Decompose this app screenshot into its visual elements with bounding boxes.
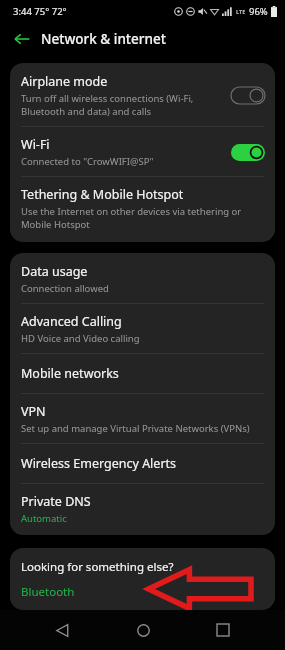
staticText: 3:44 75° 72°: [13, 5, 67, 18]
staticText: Looking for something else?: [21, 559, 174, 575]
button[interactable]: Back: [44, 612, 80, 648]
button[interactable]: Airplane mode: [10, 63, 275, 126]
staticText: Tethering & Mobile Hotspot: [21, 186, 184, 203]
staticText: Use the Internet on other devices via te…: [21, 205, 265, 231]
staticText: Automatic: [21, 512, 67, 525]
staticText: Bluetooth: [21, 584, 75, 596]
button[interactable]: Mobile networks: [10, 354, 275, 393]
staticText: Set up and manage Virtual Private Networ…: [21, 422, 250, 435]
staticText: VPN: [21, 403, 46, 420]
button[interactable]: Bluetooth: [21, 584, 75, 596]
button[interactable]: Home: [125, 612, 161, 648]
staticText: 96%: [249, 5, 268, 18]
staticText: HD Voice and Video calling: [21, 332, 140, 345]
button[interactable]: Advanced Calling: [10, 304, 275, 353]
staticText: LTE: [236, 8, 246, 15]
button[interactable]: Back: [9, 26, 35, 52]
staticText: Mobile networks: [21, 365, 119, 382]
staticText: Data usage: [21, 263, 88, 280]
staticText: Connection allowed: [21, 282, 109, 295]
button[interactable]: VPN: [10, 394, 275, 443]
button[interactable]: Wireless Emergency Alerts: [10, 444, 275, 483]
staticText: Private DNS: [21, 493, 91, 510]
staticText: Wireless Emergency Alerts: [21, 455, 177, 472]
button[interactable]: Data usage: [10, 253, 275, 303]
staticText: Connected to "CrowWIFI@SP": [21, 155, 154, 168]
button[interactable]: Recent apps: [205, 612, 241, 648]
button[interactable]: Wi-Fi: [10, 127, 275, 176]
staticText: Turn off all wireless connections (Wi-Fi…: [21, 92, 225, 118]
button[interactable]: Switch on: [231, 144, 265, 161]
staticText: Wi-Fi: [21, 136, 50, 153]
button[interactable]: Private DNS: [10, 484, 275, 535]
staticText: Network & internet: [41, 30, 166, 48]
staticText: Airplane mode: [21, 73, 108, 90]
staticText: Advanced Calling: [21, 313, 122, 330]
button[interactable]: Switch off: [231, 87, 265, 104]
button[interactable]: Tethering & Mobile Hotspot: [10, 177, 275, 242]
